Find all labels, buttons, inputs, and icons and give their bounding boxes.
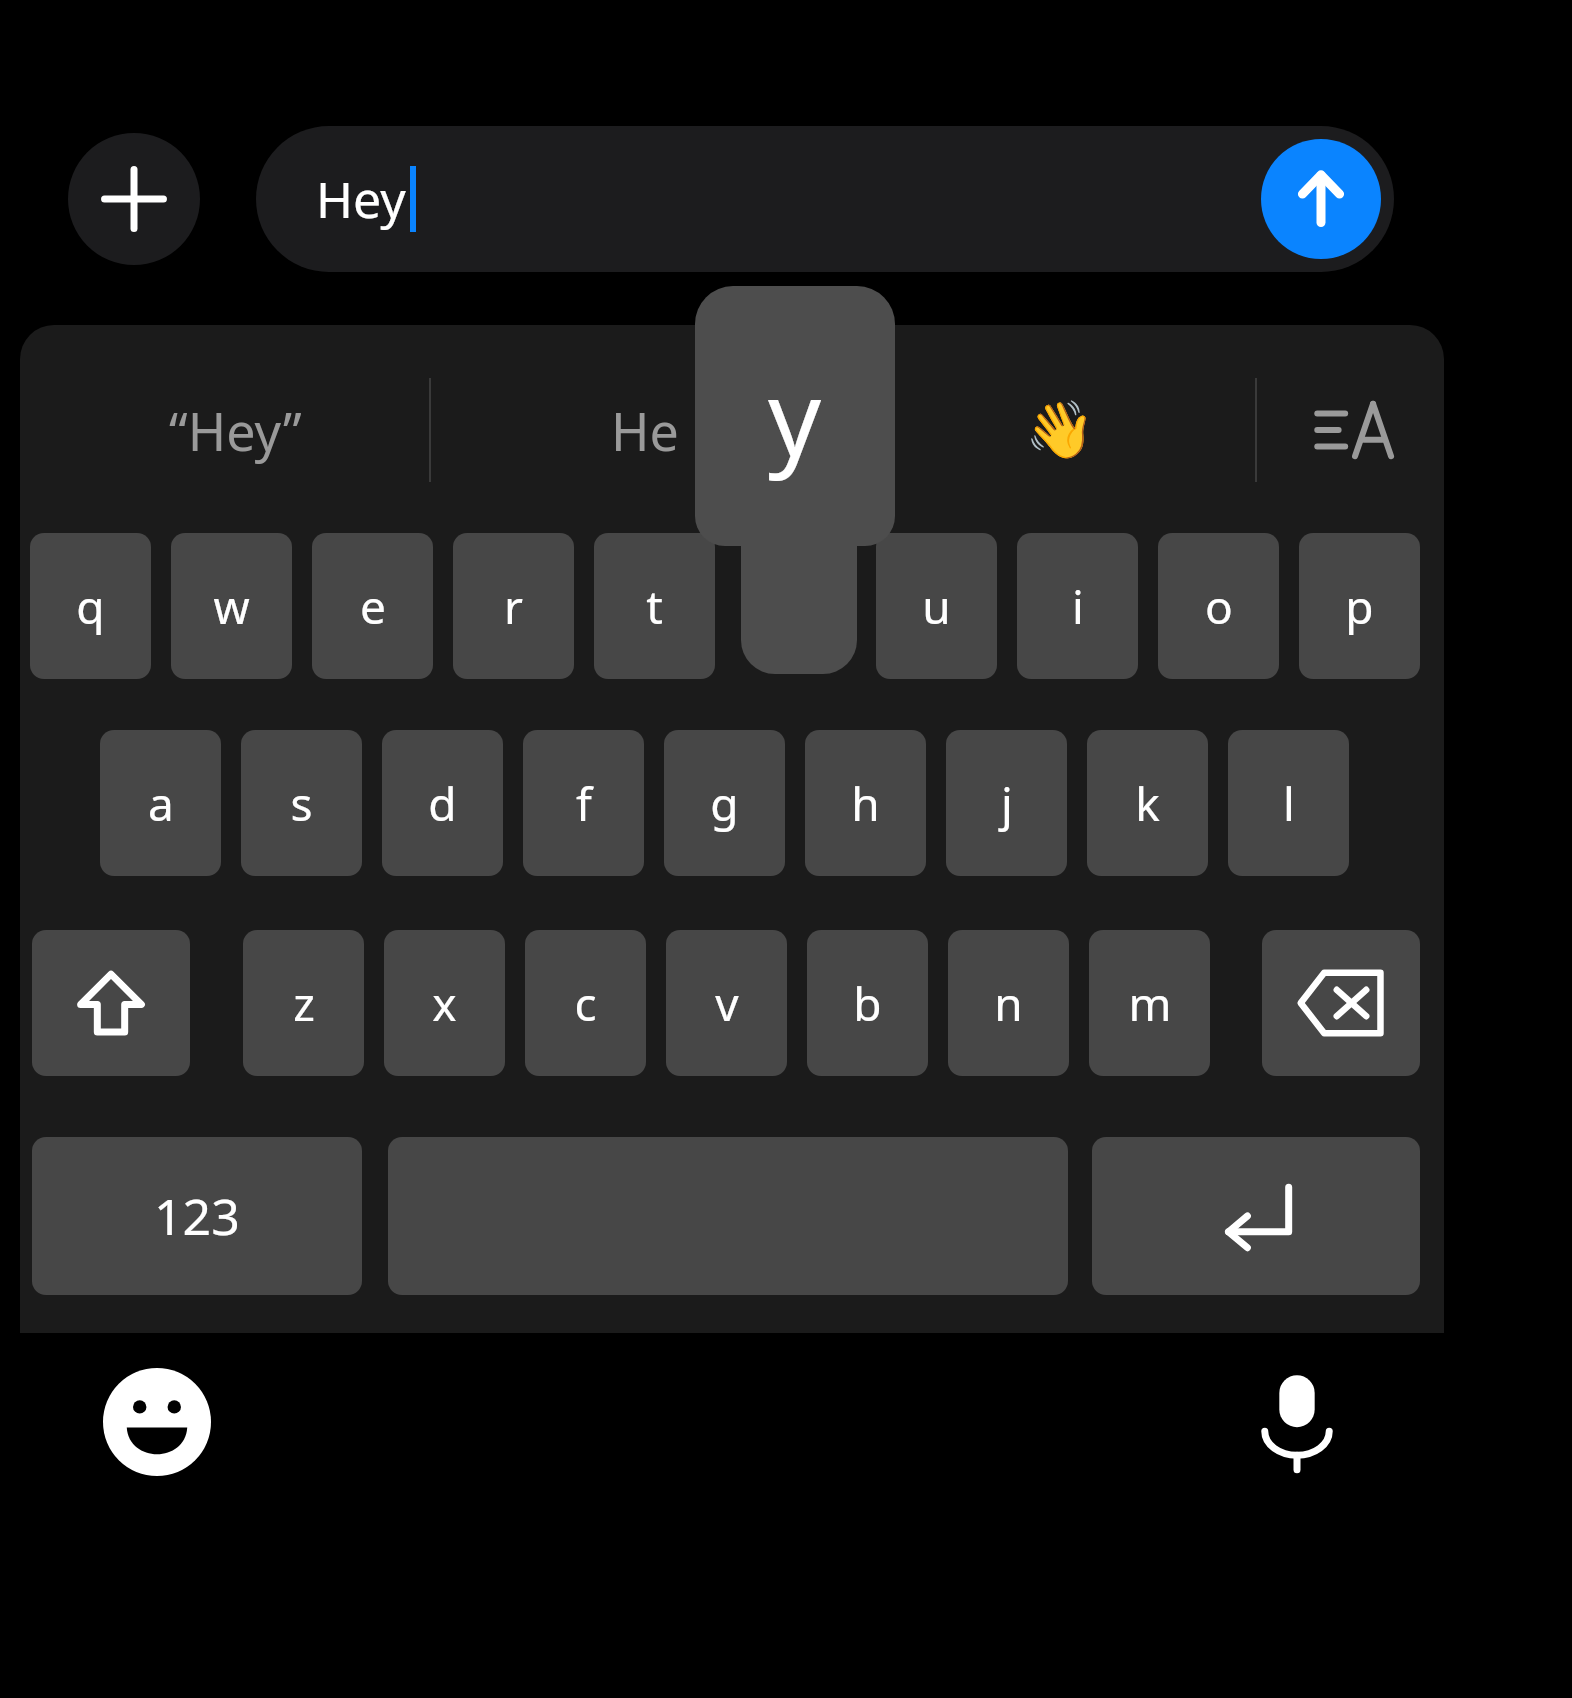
button[interactable]: i [1017,533,1138,679]
staticText: p [1345,575,1374,638]
staticText: i [1072,575,1084,638]
button[interactable]: 👋 [880,345,1240,515]
button[interactable]: k [1087,730,1208,876]
button[interactable]: Send [1261,139,1381,259]
staticText: m [1128,972,1172,1035]
button[interactable]: Backspace [1262,930,1420,1076]
staticText: w [213,575,250,638]
button[interactable]: Emoji [90,1355,224,1489]
button[interactable]: b [807,930,928,1076]
staticText: x [432,972,457,1035]
staticText: r [504,575,523,638]
staticText: “Hey” [169,395,302,466]
staticText: He [611,395,679,466]
staticText: o [1205,575,1233,638]
staticText: v [715,972,739,1035]
staticText: y [768,345,822,487]
button[interactable]: He [440,345,850,515]
staticText: l [1283,772,1295,835]
button[interactable]: o [1158,533,1279,679]
button[interactable]: t [594,533,715,679]
button[interactable]: l [1228,730,1349,876]
button[interactable]: w [171,533,292,679]
button[interactable]: s [241,730,362,876]
button[interactable]: Text formatting [1270,345,1440,515]
button[interactable]: u [876,533,997,679]
button[interactable]: m [1089,930,1210,1076]
staticText: Hey [316,165,406,233]
button[interactable]: a [100,730,221,876]
button[interactable]: Voice input [1230,1355,1364,1489]
button[interactable]: 123 [32,1137,362,1295]
staticText: n [994,972,1023,1035]
button[interactable]: Shift [32,930,190,1076]
button[interactable]: y [695,286,895,546]
staticText: g [710,772,739,835]
staticText: c [574,972,597,1035]
staticText: f [576,772,592,835]
button[interactable]: r [453,533,574,679]
button[interactable]: Hey [256,126,1394,272]
staticText: q [76,575,105,638]
staticText: h [851,772,880,835]
staticText: a [148,772,174,835]
staticText: 👋 [1025,397,1095,463]
button[interactable]: p [1299,533,1420,679]
button[interactable]: Enter [1092,1137,1420,1295]
button[interactable]: v [666,930,787,1076]
button[interactable]: “Hey” [40,345,430,515]
button[interactable]: d [382,730,503,876]
staticText: d [428,772,457,835]
button[interactable]: z [243,930,364,1076]
staticText: t [646,575,663,638]
staticText: k [1135,772,1160,835]
button[interactable]: x [384,930,505,1076]
button[interactable]: c [525,930,646,1076]
button[interactable]: f [523,730,644,876]
staticText: j [1001,772,1013,835]
staticText: e [360,575,386,638]
staticText: z [293,972,315,1035]
button[interactable]: e [312,533,433,679]
staticText: 123 [154,1182,240,1250]
button[interactable]: h [805,730,926,876]
staticText: b [853,972,882,1035]
button[interactable]: g [664,730,785,876]
staticText: s [290,772,313,835]
staticText: u [922,575,951,638]
button[interactable]: j [946,730,1067,876]
button[interactable]: n [948,930,1069,1076]
button[interactable]: q [30,533,151,679]
button[interactable]: Add attachment [68,133,200,265]
